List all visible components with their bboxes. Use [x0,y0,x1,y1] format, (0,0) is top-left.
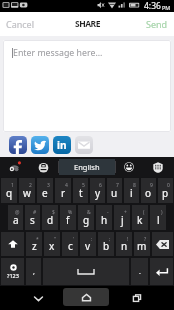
staticText: ' [73,236,75,243]
button[interactable]: ? [134,232,150,256]
staticText: v [85,239,91,253]
button[interactable]: ( [132,205,148,230]
staticText: - [107,209,109,216]
staticText: + [124,209,127,216]
staticText: 1 [11,182,14,189]
staticText: l [157,213,160,227]
staticText: SHARE [75,18,100,30]
button[interactable]: Shift [1,232,24,256]
button[interactable]: Stickers [29,157,58,177]
button[interactable]: & [78,205,94,230]
staticText: z [32,239,37,253]
button[interactable]: Share on LinkedIn [53,136,71,154]
button[interactable]: 1 [1,178,17,203]
staticText: u [111,186,118,200]
button[interactable]: 3 [37,178,53,203]
button[interactable]: Incognito mode [0,157,29,177]
staticText: 0 [167,182,170,189]
staticText: , [33,267,35,277]
staticText: 4:36 [144,0,161,12]
staticText: 2 [29,182,32,189]
button[interactable]: ! [116,232,132,256]
staticText: k [137,213,143,227]
button[interactable]: # [25,205,40,230]
button[interactable]: Emoji [116,157,142,177]
staticText: m [137,239,147,253]
staticText: b [103,239,110,253]
button[interactable]: Symbols [1,258,24,285]
button[interactable]: + [114,205,130,230]
staticText: : [91,236,93,243]
button[interactable]: Send [140,12,174,36]
staticText: 7 [116,182,119,189]
button[interactable]: * [26,232,42,256]
button[interactable]: 4 [55,178,71,203]
staticText: y [95,186,101,200]
staticText: ( [143,209,145,216]
staticText: q [6,186,13,200]
button[interactable]: Back [26,286,51,310]
button[interactable]: 2 [19,178,35,203]
staticText: ! [127,236,129,243]
button[interactable]: 0 [158,178,173,203]
button[interactable]: , [26,258,41,285]
staticText: ?123 [7,272,19,279]
button[interactable]: 8 [124,178,139,203]
staticText: * [36,236,39,243]
staticText: n [121,239,128,253]
staticText: English [74,162,100,172]
button[interactable]: Share on Facebook [9,136,27,154]
button[interactable]: ; [98,232,114,256]
staticText: ) [161,209,163,216]
button[interactable]: Backspace [152,232,173,256]
button[interactable]: Recent apps [124,286,149,310]
button[interactable]: Share on Twitter [31,136,49,154]
button[interactable]: $ [42,205,58,230]
button[interactable]: 7 [107,178,122,203]
staticText: 6 [99,182,102,189]
button[interactable]: " [44,232,60,256]
button[interactable]: English [59,159,115,175]
button[interactable]: Enter [150,258,173,285]
button[interactable]: 6 [90,178,105,203]
button[interactable]: Space [43,258,129,285]
staticText: i [130,186,133,200]
staticText: f [66,213,70,227]
staticText: ; [109,236,111,243]
staticText: # [33,209,37,216]
staticText: o [145,186,152,200]
button[interactable]: % [60,205,76,230]
button[interactable]: ) [150,205,166,230]
staticText: r [61,186,66,200]
button[interactable]: . [131,258,148,285]
staticText: p [162,186,169,200]
staticText: d [47,213,54,227]
staticText: Send [146,18,168,30]
button[interactable]: Enter message here... [3,40,171,132]
button[interactable]: Keyboard settings [142,157,174,177]
staticText: . [139,267,141,277]
staticText: g [83,213,90,227]
button[interactable]: 5 [73,178,88,203]
button[interactable]: : [80,232,96,256]
button[interactable]: @ [8,205,23,230]
staticText: " [54,236,57,243]
staticText: % [68,209,73,216]
staticText: 5 [82,182,85,189]
staticText: Enter message here... [13,47,103,59]
staticText: $ [52,209,55,216]
button[interactable]: - [96,205,112,230]
staticText: 9 [150,182,153,189]
staticText: t [79,186,83,200]
staticText: c [68,239,73,253]
button[interactable]: 9 [141,178,156,203]
staticText: 8 [133,182,136,189]
staticText: x [49,239,55,253]
staticText: e [42,186,48,200]
button[interactable]: Share by email [75,136,93,154]
button[interactable]: Home [63,288,109,306]
staticText: ? [144,236,147,243]
staticText: s [30,213,35,227]
button[interactable]: ' [62,232,78,256]
button[interactable]: Cancel [0,12,41,36]
